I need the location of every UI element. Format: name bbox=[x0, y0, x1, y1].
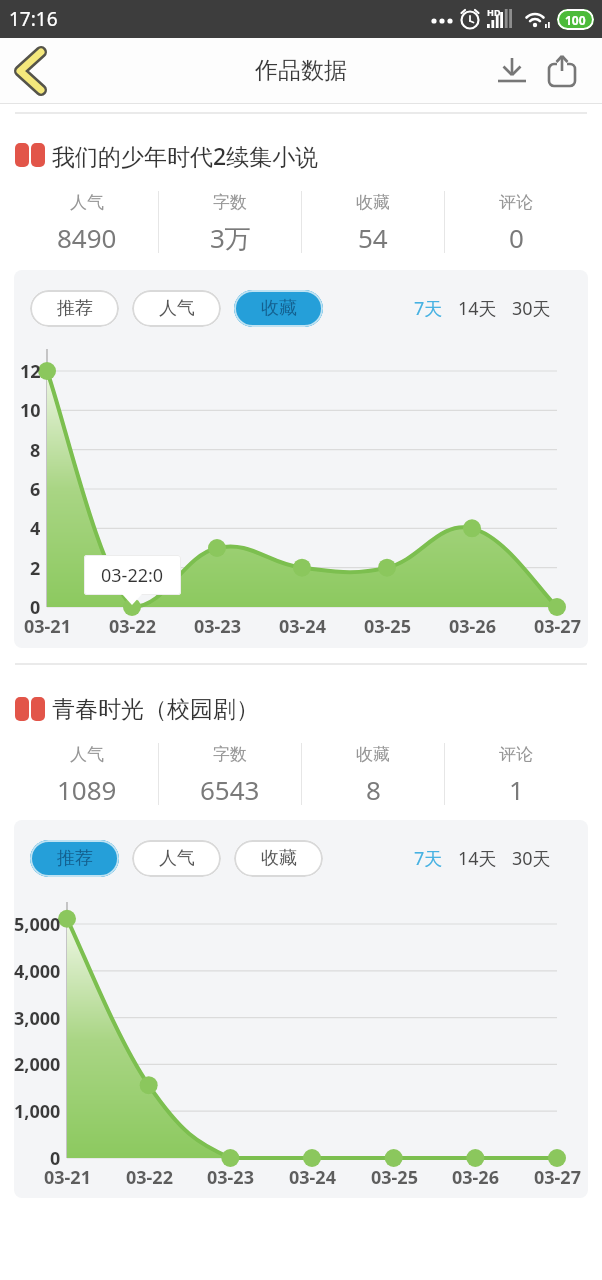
staticText: 03-23 bbox=[207, 1165, 254, 1189]
staticText: 0 bbox=[509, 220, 524, 255]
staticText: 评论 bbox=[499, 192, 533, 213]
staticText: 03-27 bbox=[534, 614, 581, 638]
staticText: 03-24 bbox=[279, 614, 326, 638]
staticText: 人气 bbox=[159, 847, 195, 870]
button[interactable]: 推荐 bbox=[30, 840, 119, 877]
staticText: 收藏 bbox=[356, 192, 390, 213]
staticText: 人气 bbox=[70, 744, 104, 765]
staticText: 03-23 bbox=[194, 614, 241, 638]
staticText: 4 bbox=[30, 516, 41, 540]
staticText: 8490 bbox=[57, 220, 117, 255]
staticText: 青春时光（校园剧） bbox=[52, 695, 259, 724]
staticText: 03-24 bbox=[289, 1165, 336, 1189]
staticText: 2,000 bbox=[14, 1052, 61, 1076]
staticText: 收藏 bbox=[261, 847, 297, 870]
button[interactable]: 收藏 bbox=[234, 290, 323, 327]
button[interactable]: 7天 bbox=[414, 296, 443, 321]
button[interactable]: 14天 bbox=[458, 846, 497, 871]
staticText: 54 bbox=[358, 220, 388, 255]
staticText: 10 bbox=[20, 398, 41, 422]
button[interactable] bbox=[10, 46, 50, 96]
staticText: 03-22:0 bbox=[101, 563, 164, 588]
staticText: 8 bbox=[366, 772, 381, 807]
button[interactable] bbox=[492, 46, 532, 96]
staticText: 03-25 bbox=[364, 614, 411, 638]
staticText: 03-21 bbox=[44, 1165, 91, 1189]
staticText: 03-22 bbox=[126, 1165, 173, 1189]
staticText: 4,000 bbox=[14, 959, 61, 983]
staticText: 0 bbox=[30, 595, 41, 619]
staticText: 人气 bbox=[159, 297, 195, 320]
staticText: 1 bbox=[509, 772, 524, 807]
staticText: 作品数据 bbox=[255, 56, 347, 85]
button[interactable]: 推荐 bbox=[30, 290, 119, 327]
button[interactable]: 人气 bbox=[132, 290, 221, 327]
staticText: 5,000 bbox=[14, 912, 61, 936]
staticText: 03-25 bbox=[371, 1165, 418, 1189]
staticText: HD bbox=[487, 6, 501, 18]
staticText: 03-26 bbox=[452, 1165, 499, 1189]
staticText: 收藏 bbox=[261, 297, 297, 320]
staticText: 2 bbox=[30, 556, 41, 580]
staticText: 17:16 bbox=[9, 6, 58, 32]
staticText: 1089 bbox=[57, 772, 117, 807]
staticText: 0 bbox=[50, 1146, 61, 1170]
staticText: 03-22 bbox=[109, 614, 156, 638]
button[interactable] bbox=[542, 46, 582, 96]
staticText: 100 bbox=[565, 12, 586, 28]
staticText: 6543 bbox=[200, 772, 260, 807]
button[interactable]: 7天 bbox=[414, 846, 443, 871]
staticText: 1,000 bbox=[14, 1099, 61, 1123]
staticText: 03-27 bbox=[534, 1165, 581, 1189]
staticText: 评论 bbox=[499, 744, 533, 765]
staticText: 8 bbox=[30, 438, 41, 462]
staticText: 我们的少年时代2续集小说 bbox=[52, 140, 319, 171]
staticText: 12 bbox=[20, 359, 41, 383]
button[interactable]: 30天 bbox=[512, 296, 551, 321]
staticText: 3,000 bbox=[14, 1006, 61, 1030]
button[interactable]: 14天 bbox=[458, 296, 497, 321]
staticText: 3万 bbox=[210, 220, 251, 256]
staticText: 6 bbox=[30, 477, 41, 501]
staticText: 字数 bbox=[213, 192, 247, 213]
staticText: 字数 bbox=[213, 744, 247, 765]
staticText: 03-21 bbox=[24, 614, 71, 638]
staticText: 人气 bbox=[70, 192, 104, 213]
staticText: 推荐 bbox=[57, 297, 93, 320]
staticText: 03-26 bbox=[449, 614, 496, 638]
staticText: 收藏 bbox=[356, 744, 390, 765]
staticText: 推荐 bbox=[57, 847, 93, 870]
button[interactable]: 收藏 bbox=[234, 840, 323, 877]
button[interactable]: 人气 bbox=[132, 840, 221, 877]
button[interactable]: 30天 bbox=[512, 846, 551, 871]
